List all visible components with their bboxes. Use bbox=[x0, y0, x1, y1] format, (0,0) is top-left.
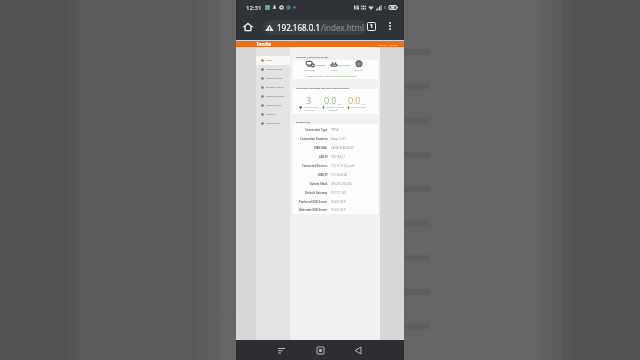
button[interactable]: Internet Settings bbox=[256, 65, 290, 74]
staticText: 0.0 bbox=[324, 94, 337, 106]
staticText: Properties Overview and Real-time Statis… bbox=[296, 86, 349, 89]
staticText: KB/s bbox=[361, 102, 367, 105]
button[interactable]: Home bbox=[311, 340, 329, 360]
staticText: 1 bbox=[370, 23, 373, 30]
staticText: 10.241.55.9 bbox=[331, 208, 346, 212]
staticText: Connected bbox=[338, 64, 350, 67]
button[interactable]: Recent apps bbox=[272, 340, 290, 360]
staticText: Upload Speed bbox=[351, 106, 367, 109]
staticText: Wireless Settings bbox=[266, 77, 283, 80]
staticText: 12:31 bbox=[246, 4, 262, 12]
staticText: 255.255.255.254 bbox=[331, 182, 352, 186]
staticText: Chinese bbox=[389, 43, 398, 46]
staticText: 6days 12:31 bbox=[331, 137, 346, 141]
staticText: Download Speed bbox=[326, 106, 345, 109]
button[interactable]: Parental Control bbox=[256, 101, 290, 110]
button[interactable]: Wireless Settings bbox=[256, 74, 290, 83]
staticText: Logout bbox=[378, 43, 386, 46]
button[interactable]: Home bbox=[239, 18, 257, 36]
staticText: /index.html bbox=[321, 22, 365, 33]
staticText: Tenda bbox=[331, 68, 338, 71]
staticText: Internet bbox=[354, 68, 364, 71]
staticText: Transfer bbox=[329, 109, 338, 112]
staticText: Internet Settings bbox=[266, 68, 283, 71]
staticText: 192.168.0.1 bbox=[277, 22, 321, 33]
staticText: Default Gateway bbox=[305, 191, 328, 195]
staticText: WAN MAC bbox=[314, 146, 328, 150]
button[interactable]: Administration bbox=[256, 119, 290, 128]
staticText: Computer bbox=[304, 68, 316, 71]
button[interactable]: Back bbox=[349, 340, 367, 360]
staticText: 3 bbox=[306, 94, 312, 106]
staticText: C8:3A:35:A5:44:40 bbox=[331, 146, 354, 150]
staticText: Connection Duration bbox=[300, 137, 328, 141]
staticText: 0.0 bbox=[348, 94, 361, 106]
staticText: Parental Control bbox=[266, 104, 282, 107]
button[interactable]: Tabs, 1 open bbox=[363, 18, 380, 35]
staticText: Internet Connection Status bbox=[296, 55, 329, 58]
button[interactable]: Advanced bbox=[256, 110, 290, 119]
staticText: KB/s bbox=[337, 102, 343, 105]
staticText: 172.17.31.42_multi bbox=[331, 164, 355, 168]
button[interactable]: Home bbox=[256, 56, 290, 65]
staticText: Subnet Mask bbox=[310, 182, 328, 186]
staticText: 172.16.22.46 bbox=[331, 173, 347, 177]
staticText: Connected Devices bbox=[302, 164, 328, 168]
staticText: You are connected to the Internet. bbox=[325, 75, 358, 78]
staticText: Connection Status: bbox=[306, 75, 324, 78]
button[interactable]: Bandwidth Control bbox=[256, 83, 290, 92]
staticText: 10.177.1.40 bbox=[331, 191, 346, 195]
staticText: Administration bbox=[266, 122, 281, 125]
staticText: System Info bbox=[296, 120, 311, 123]
staticText: Alternate DNS Server bbox=[299, 208, 328, 212]
staticText: WAN IP bbox=[318, 173, 328, 177]
staticText: Connected bbox=[314, 64, 326, 67]
staticText: Tenda bbox=[256, 41, 271, 47]
staticText: Real-time bbox=[304, 109, 315, 112]
staticText: Online Devices bbox=[303, 106, 319, 109]
staticText: LAN IP bbox=[319, 155, 328, 159]
button[interactable]: More options bbox=[382, 18, 398, 34]
staticText: 192.168.2.1 bbox=[331, 155, 346, 159]
staticText: 5 bbox=[384, 5, 387, 10]
staticText: Connection Type bbox=[305, 128, 328, 132]
staticText: 10.241.55.8 bbox=[331, 200, 346, 204]
staticText: Home bbox=[266, 59, 272, 62]
staticText: Advanced bbox=[266, 113, 276, 116]
staticText: Bandwidth Control bbox=[266, 86, 284, 89]
button[interactable]: Wireless Repeating bbox=[256, 92, 290, 101]
staticText: PPPoE bbox=[331, 128, 339, 132]
staticText: Preferred DNS Server bbox=[299, 200, 328, 204]
staticText: Wireless Repeating bbox=[266, 95, 285, 98]
button[interactable]: 192.168.0.1 bbox=[263, 20, 367, 35]
